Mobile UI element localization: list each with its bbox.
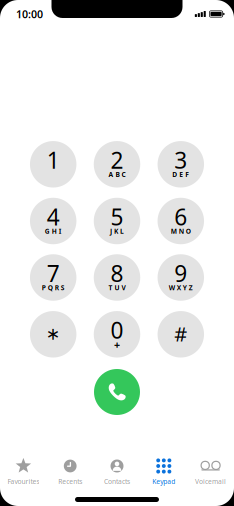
- staticText: 1: [47, 145, 60, 175]
- staticText: Keypad: [152, 477, 175, 486]
- staticText: Recents: [58, 477, 82, 486]
- button[interactable]: Recents: [47, 453, 94, 487]
- button[interactable]: #: [158, 311, 204, 358]
- staticText: ∗: [46, 324, 61, 344]
- staticText: G H I: [45, 227, 62, 236]
- staticText: 4: [47, 201, 60, 232]
- staticText: P Q R S: [42, 283, 65, 292]
- staticText: 8: [110, 258, 123, 288]
- staticText: 9: [174, 258, 187, 288]
- staticText: D E F: [172, 170, 189, 179]
- button[interactable]: Keypad: [140, 453, 187, 487]
- staticText: 5: [110, 201, 123, 232]
- staticText: #: [174, 320, 187, 347]
- button[interactable]: 8: [94, 254, 140, 301]
- staticText: 6: [174, 201, 187, 232]
- staticText: J K L: [110, 227, 124, 236]
- button[interactable]: Favourites: [0, 453, 47, 487]
- staticText: Contacts: [104, 477, 130, 486]
- staticText: 3: [174, 145, 187, 175]
- staticText: W X Y Z: [169, 283, 193, 292]
- staticText: +: [114, 337, 120, 352]
- button[interactable]: 9: [158, 254, 204, 301]
- button[interactable]: Voicemail: [187, 453, 234, 487]
- button[interactable]: 7: [30, 254, 76, 301]
- button[interactable]: 6: [158, 198, 204, 244]
- button[interactable]: ∗: [30, 311, 76, 358]
- staticText: T U V: [108, 283, 125, 292]
- button[interactable]: 5: [94, 198, 140, 244]
- staticText: 7: [47, 258, 60, 288]
- staticText: 0: [110, 315, 123, 345]
- button[interactable]: 0: [94, 311, 140, 358]
- staticText: 10:00: [16, 7, 43, 21]
- button[interactable]: 1: [30, 141, 76, 188]
- button[interactable]: 2: [94, 141, 140, 188]
- button[interactable]: 3: [158, 141, 204, 188]
- staticText: 2: [110, 145, 123, 175]
- staticText: A B C: [108, 170, 125, 179]
- staticText: M N O: [171, 227, 191, 236]
- button[interactable]: Contacts: [94, 453, 140, 487]
- staticText: Favourites: [7, 477, 39, 486]
- staticText: Voicemail: [195, 477, 226, 486]
- button[interactable]: 4: [30, 198, 76, 244]
- button[interactable]: Call: [94, 369, 140, 415]
